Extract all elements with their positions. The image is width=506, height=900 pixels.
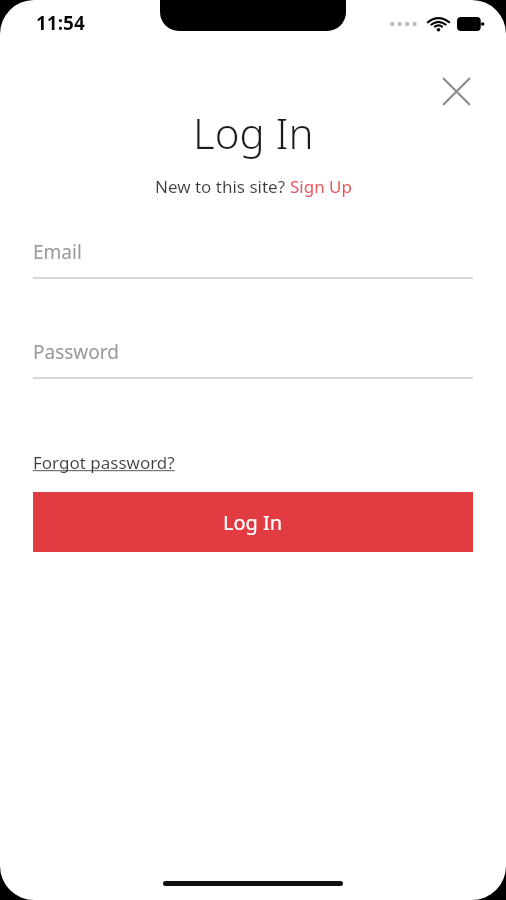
button[interactable]: Log In [33, 492, 473, 552]
staticText: Sign Up [290, 175, 352, 198]
button[interactable]: Close [428, 63, 484, 119]
staticText: Log In [223, 509, 283, 536]
staticText: 11:54 [36, 10, 85, 36]
staticText: New to this site? [155, 175, 290, 198]
staticText: Password [33, 339, 119, 365]
staticText: Forgot password? [33, 451, 175, 474]
button[interactable]: Forgot password? [33, 451, 175, 474]
staticText: Log In [193, 104, 314, 161]
button[interactable]: Password [33, 337, 473, 379]
button[interactable]: Email [33, 237, 473, 279]
staticText: Email [33, 239, 82, 265]
button[interactable]: Sign Up [290, 175, 352, 198]
